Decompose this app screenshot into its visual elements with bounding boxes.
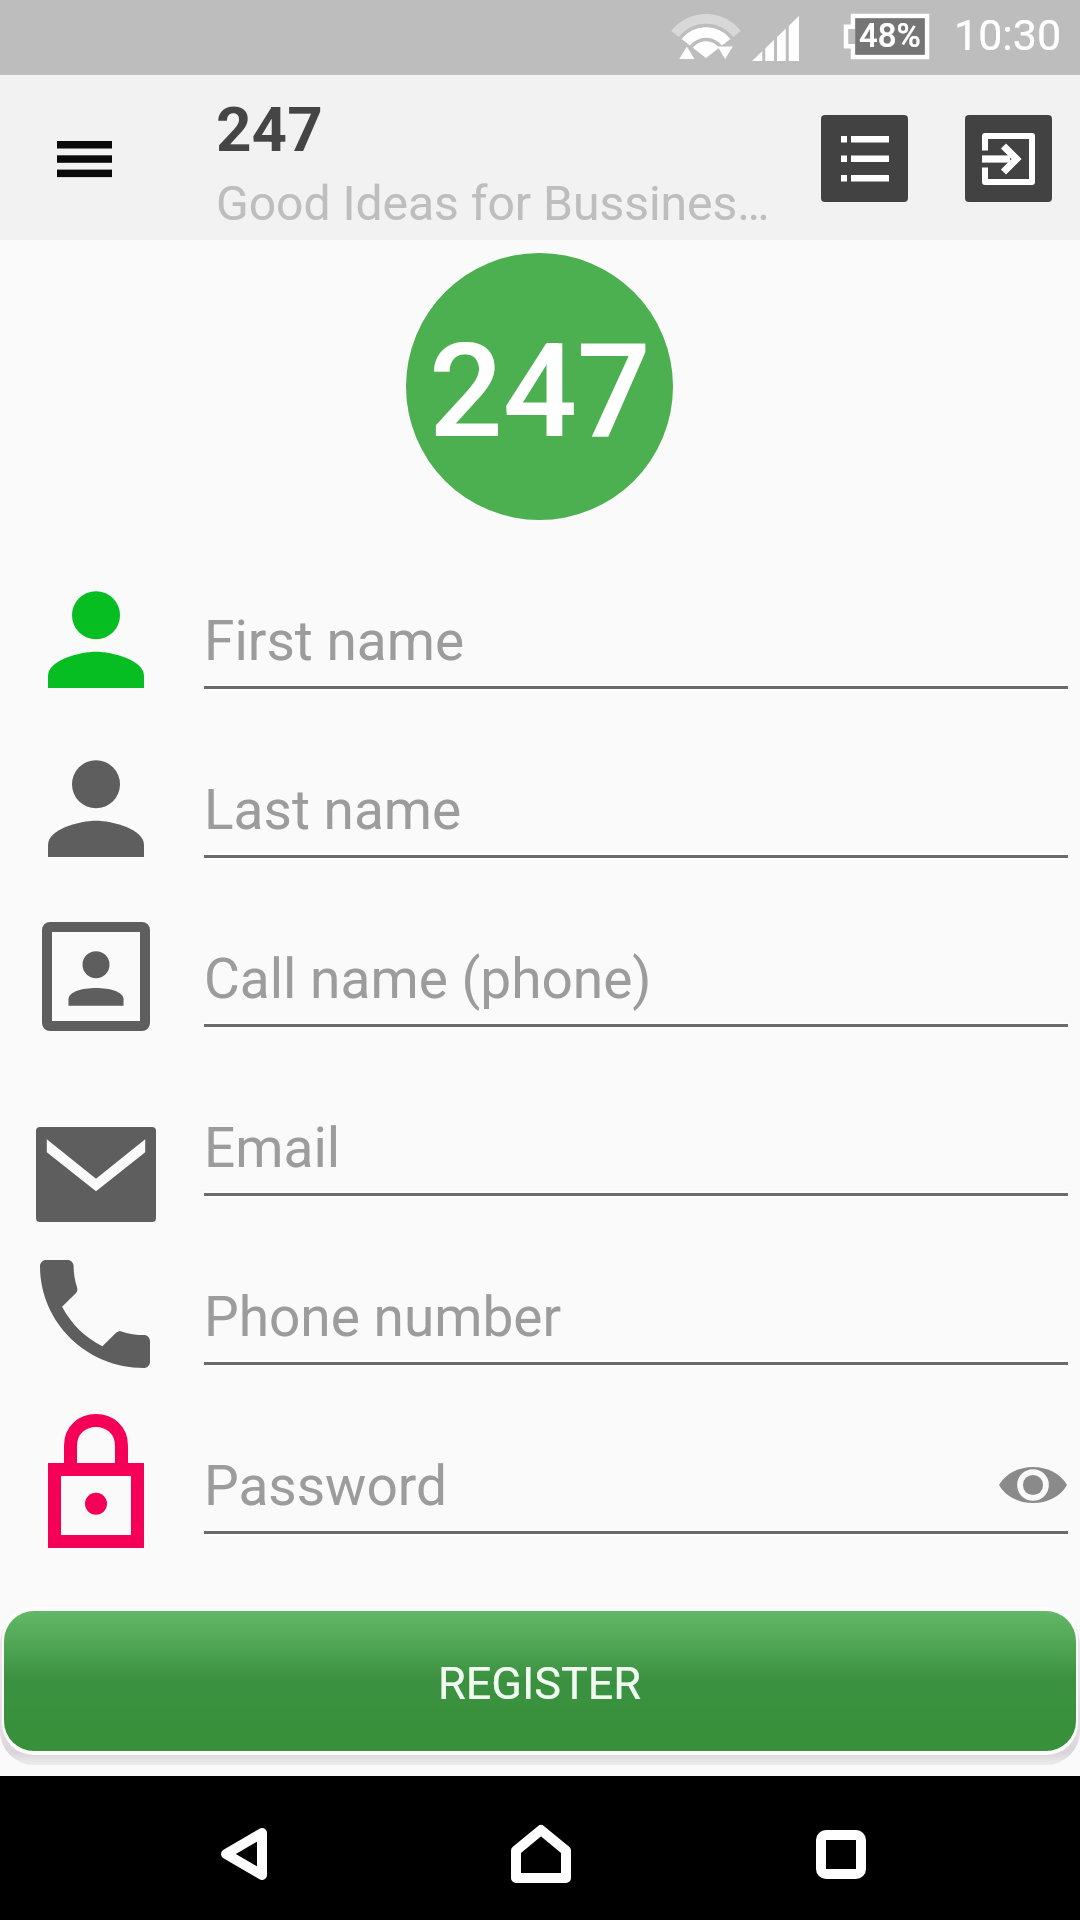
button[interactable]: Email xyxy=(0,1027,1080,1196)
staticText: 247 xyxy=(216,93,323,166)
button[interactable]: Call name (phone) xyxy=(0,858,1080,1027)
staticText: 10:30 xyxy=(954,10,1062,60)
button[interactable]: Recents xyxy=(781,1794,901,1914)
button[interactable]: Password xyxy=(0,1365,1080,1534)
staticText: Call name (phone) xyxy=(204,947,652,1011)
button[interactable]: Menu xyxy=(26,101,142,217)
staticText: 247 xyxy=(429,315,651,467)
button[interactable]: Last name xyxy=(0,689,1080,858)
button[interactable]: List xyxy=(821,115,908,202)
button[interactable]: Home xyxy=(481,1794,601,1914)
staticText: First name xyxy=(204,609,465,673)
button[interactable]: REGISTER xyxy=(4,1611,1076,1751)
button[interactable]: Back xyxy=(181,1794,301,1914)
button[interactable]: First name xyxy=(0,520,1080,689)
staticText: Last name xyxy=(204,778,462,842)
staticText: Good Ideas for Bussines… xyxy=(216,175,770,231)
staticText: 48% xyxy=(859,16,921,55)
staticText: Email xyxy=(204,1116,341,1180)
button[interactable]: Show password xyxy=(988,1440,1078,1530)
staticText: Phone number xyxy=(204,1285,562,1349)
staticText: Password xyxy=(204,1454,447,1518)
staticText: REGISTER xyxy=(438,1657,642,1710)
button[interactable]: Phone number xyxy=(0,1196,1080,1365)
button[interactable]: Login xyxy=(965,115,1052,202)
